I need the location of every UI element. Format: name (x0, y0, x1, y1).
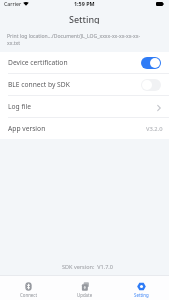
staticText: 1:59 PM (74, 0, 95, 7)
staticText: Log file (8, 102, 31, 111)
button[interactable]: Connect tab (0, 276, 57, 300)
button[interactable]: Switch off (141, 79, 161, 91)
staticText: SDK version: V1.7.0 (3, 263, 169, 270)
button[interactable]: BLE connect by SDK (0, 74, 169, 95)
staticText: Setting (134, 292, 149, 298)
staticText: Update (77, 292, 93, 298)
staticText: V3.2.0 (146, 125, 163, 133)
staticText: Carrier (4, 0, 22, 7)
button[interactable]: App version (0, 118, 169, 139)
staticText: Device certification (8, 58, 68, 67)
button[interactable]: Device certification (0, 52, 169, 73)
staticText: Connect (20, 292, 38, 298)
staticText: BLE connect by SDK (8, 80, 70, 89)
staticText: App version (8, 124, 46, 133)
button[interactable]: Setting tab (113, 276, 169, 300)
button[interactable]: Log file (0, 96, 169, 117)
button[interactable]: Switch on (141, 57, 161, 69)
staticText: Setting (69, 13, 100, 24)
staticText: Print log location.../Document/JL_LOG_xx… (7, 33, 143, 46)
button[interactable]: Update tab (57, 276, 113, 300)
